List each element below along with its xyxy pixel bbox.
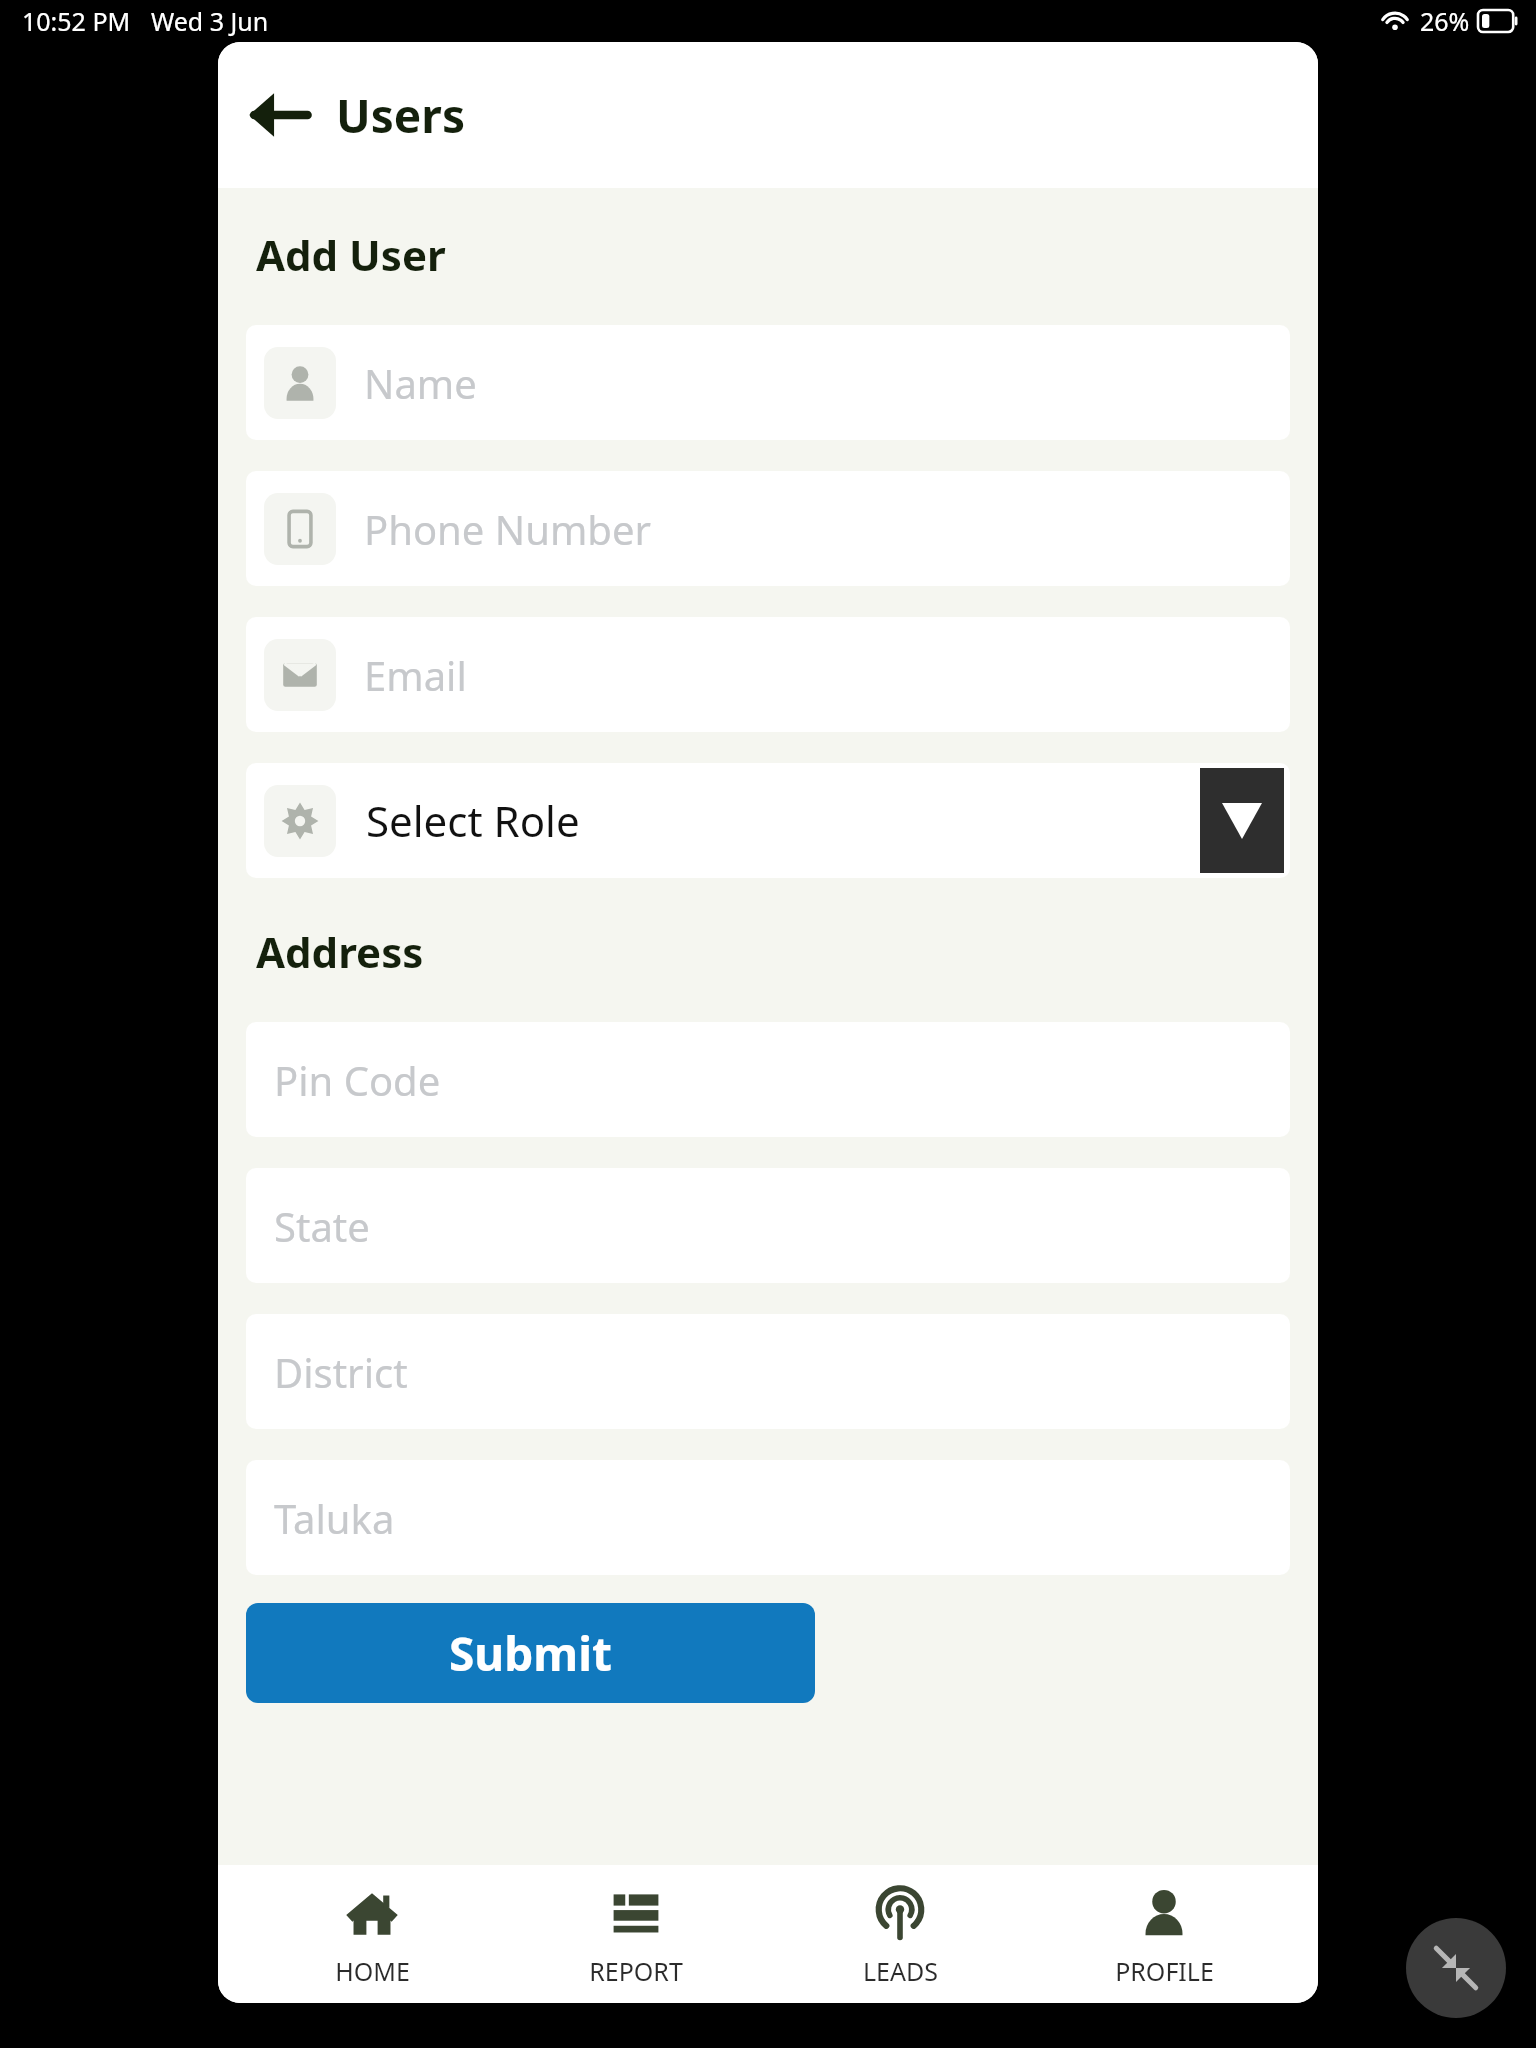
staticText: State — [274, 1199, 370, 1253]
staticText: 10:52 PM — [22, 4, 131, 38]
staticText: Add User — [256, 226, 446, 283]
button[interactable]: Open role dropdown — [1200, 768, 1284, 873]
staticText: Submit — [449, 1622, 612, 1685]
button[interactable]: District — [246, 1314, 1290, 1429]
button[interactable]: Pin Code — [246, 1022, 1290, 1137]
staticText: PROFILE — [1115, 1954, 1214, 1988]
button[interactable]: Submit — [246, 1603, 815, 1703]
staticText: District — [274, 1345, 408, 1399]
button[interactable]: Name — [246, 325, 1290, 440]
staticText: HOME — [335, 1954, 410, 1988]
staticText: Name — [364, 356, 477, 410]
button[interactable]: Back — [236, 72, 322, 158]
staticText: REPORT — [589, 1954, 683, 1988]
staticText: Email — [364, 648, 467, 702]
button[interactable]: HOME — [262, 1865, 482, 2003]
button[interactable]: State — [246, 1168, 1290, 1283]
button[interactable]: Email — [246, 617, 1290, 732]
button[interactable]: Collapse window — [1406, 1918, 1506, 2018]
staticText: 26% — [1420, 4, 1470, 38]
button[interactable]: PROFILE — [1054, 1865, 1274, 2003]
staticText: Wed 3 Jun — [151, 4, 269, 38]
button[interactable]: Taluka — [246, 1460, 1290, 1575]
button[interactable]: Phone Number — [246, 471, 1290, 586]
button[interactable]: Select Role — [246, 763, 1290, 878]
staticText: LEADS — [863, 1954, 938, 1988]
staticText: Users — [336, 84, 465, 147]
staticText: Select Role — [366, 792, 580, 849]
button[interactable]: REPORT — [526, 1865, 746, 2003]
button[interactable]: LEADS — [790, 1865, 1010, 2003]
staticText: Pin Code — [274, 1053, 441, 1107]
staticText: Taluka — [274, 1491, 395, 1545]
staticText: Phone Number — [364, 502, 651, 556]
staticText: Address — [256, 923, 424, 980]
